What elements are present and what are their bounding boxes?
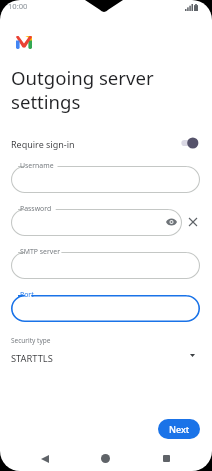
button[interactable]: Back: [32, 446, 57, 471]
button[interactable]: Next: [158, 419, 200, 439]
button[interactable]: Clear: [185, 214, 201, 230]
button[interactable]: [11, 209, 182, 236]
staticText: STARTTLS: [11, 352, 53, 365]
button[interactable]: Home: [93, 446, 118, 471]
button[interactable]: Require sign-in: [0, 131, 212, 155]
staticText: Require sign-in: [11, 138, 75, 150]
staticText: Password: [20, 204, 52, 213]
staticText: Security type: [11, 336, 51, 345]
staticText: 10:00: [8, 1, 28, 11]
button[interactable]: [11, 295, 200, 322]
staticText: Next: [169, 423, 190, 435]
staticText: Outgoing server settings: [11, 65, 166, 115]
button[interactable]: Show password: [163, 214, 179, 230]
button[interactable]: [11, 166, 200, 193]
staticText: Username: [20, 161, 54, 170]
staticText: SMTP server: [20, 247, 61, 256]
staticText: Port: [20, 290, 34, 299]
button[interactable]: Security type: [0, 333, 212, 367]
button[interactable]: [11, 252, 200, 279]
button[interactable]: Recent apps: [154, 446, 179, 471]
